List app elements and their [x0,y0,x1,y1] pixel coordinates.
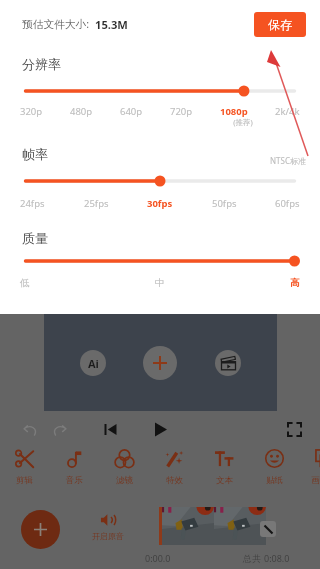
button[interactable]: AI [80,350,106,376]
staticText: 高 [290,277,300,289]
button[interactable]: Fullscreen [286,421,303,438]
button[interactable]: 音乐 [50,448,98,486]
staticText: NTSC标准 [0,155,306,166]
staticText: 60fps [275,197,300,210]
staticText: 文本 [216,475,233,486]
button[interactable]: 开启原音 [86,512,130,541]
button[interactable]: 25fps [84,197,109,210]
staticText: 2k/4k [275,105,300,118]
button[interactable]: 低 [20,277,30,289]
button[interactable]: 640p [120,105,143,118]
staticText: 分辨率 [22,56,61,72]
button[interactable]: 剪辑 [0,448,48,486]
button[interactable]: 滤镜 [100,448,148,486]
staticText: 剪辑 [16,475,33,486]
button[interactable]: 中 [155,277,165,289]
button[interactable]: slider [21,173,299,189]
button[interactable]: slider [21,253,299,269]
staticText: 特效 [166,475,183,486]
button[interactable]: 720p [170,105,193,118]
staticText: 画中画 [311,475,320,486]
staticText: 30fps [147,197,173,210]
staticText: 640p [120,105,143,118]
staticText: 中 [155,277,165,289]
button[interactable]: 2k/4k [275,105,300,118]
staticText: 720p [170,105,193,118]
button[interactable]: 画中画 [300,448,320,486]
staticText: 质量 [22,230,48,246]
button[interactable]: 320p [20,105,43,118]
staticText: 滤镜 [116,475,133,486]
staticText: 0:08.0 [264,552,290,564]
button[interactable]: Templates [215,350,241,376]
button[interactable]: Play [152,421,169,438]
staticText: 1080p [220,105,248,118]
button[interactable]: Add media [21,510,60,549]
button[interactable]: 30fps [147,197,173,210]
staticText: 24fps [20,197,45,210]
button[interactable]: 高 [290,277,300,289]
button[interactable]: 贴纸 [250,448,298,486]
staticText: 低 [20,277,30,289]
staticText: 总共 [243,552,264,564]
button[interactable]: Undo [21,421,38,438]
button[interactable]: slider [21,83,299,99]
button[interactable]: 特效 [150,448,198,486]
button[interactable]: 文本 [200,448,248,486]
button[interactable]: Video clip [159,507,266,545]
staticText: 预估文件大小: [22,17,92,32]
button[interactable]: 保存 [254,12,306,37]
staticText: 开启原音 [92,531,124,541]
button[interactable]: 24fps [20,197,45,210]
button[interactable]: 50fps [212,197,237,210]
button[interactable]: 480p [70,105,93,118]
staticText: 0:00.0 [145,552,171,564]
staticText: 贴纸 [266,475,283,486]
staticText: (推荐) [228,117,258,127]
staticText: 帧率 [22,146,48,162]
staticText: 50fps [212,197,237,210]
button[interactable]: 1080p [220,105,248,118]
staticText: 音乐 [66,475,83,486]
staticText: 25fps [84,197,109,210]
staticText: 保存 [268,17,292,32]
button[interactable]: Edit [260,521,276,537]
staticText: 480p [70,105,93,118]
staticText: 320p [20,105,43,118]
button[interactable]: Previous [102,421,119,438]
button[interactable]: Add clip [143,346,177,380]
staticText: 15.3M [95,17,128,32]
staticText: Ai [88,356,99,371]
button[interactable]: Redo [51,421,68,438]
button[interactable]: 60fps [275,197,300,210]
